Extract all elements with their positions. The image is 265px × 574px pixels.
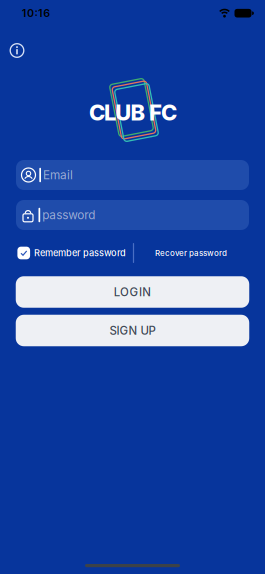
staticText: Recover password xyxy=(155,248,227,258)
staticText: password xyxy=(42,208,95,222)
staticText: CLUB FC xyxy=(89,99,177,126)
button[interactable]: Recover password xyxy=(155,248,227,258)
button[interactable]: LOGIN xyxy=(16,276,249,308)
button[interactable]: SIGN UP xyxy=(16,315,249,346)
staticText: Email xyxy=(43,168,73,182)
staticText: SIGN UP xyxy=(109,324,155,337)
button[interactable]: Remember password xyxy=(17,247,126,259)
staticText: 10:16 xyxy=(22,6,50,19)
button[interactable]: Email xyxy=(16,160,249,190)
staticText: LOGIN xyxy=(114,285,151,299)
button[interactable] xyxy=(7,40,27,60)
staticText: Remember password xyxy=(34,247,126,258)
button[interactable]: password xyxy=(16,200,249,230)
